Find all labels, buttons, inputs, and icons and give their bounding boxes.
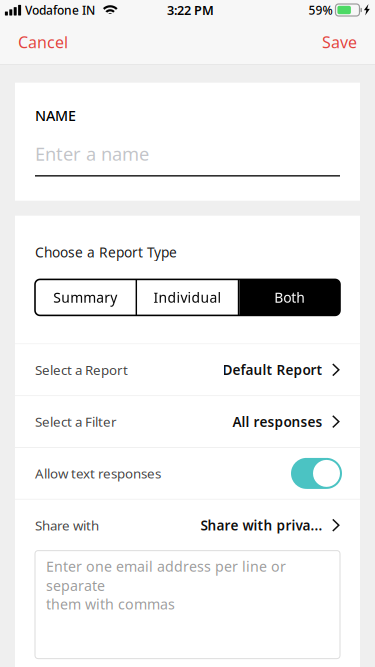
button[interactable]: Cancel: [0, 20, 82, 63]
staticText: Share with priva...: [201, 516, 323, 534]
staticText: Enter a name: [35, 141, 149, 166]
staticText: Summary: [53, 288, 117, 307]
button[interactable]: Save: [308, 20, 375, 63]
staticText: 3:22 PM: [167, 1, 214, 19]
button[interactable]: Allow text responses: [15, 448, 360, 499]
staticText: Save: [322, 31, 357, 53]
staticText: Vodafone IN: [25, 2, 95, 18]
staticText: Choose a Report Type: [35, 243, 177, 261]
staticText: NAME: [35, 106, 76, 125]
staticText: All responses: [233, 412, 323, 431]
staticText: Share with: [35, 516, 99, 534]
button[interactable]: Summary: [35, 279, 136, 315]
staticText: Select a Filter: [35, 412, 117, 431]
staticText: Select a Report: [35, 361, 128, 379]
staticText: Both: [274, 288, 305, 307]
staticText: them with commas: [46, 594, 175, 614]
staticText: 59%: [308, 2, 332, 18]
staticText: Cancel: [18, 31, 68, 53]
button[interactable]: Select a Filter: [15, 396, 360, 447]
staticText: Individual: [153, 288, 221, 307]
button[interactable]: Individual: [137, 279, 238, 315]
button[interactable]: Select a Report: [15, 344, 360, 395]
button[interactable]: Both: [239, 279, 340, 315]
button[interactable]: Share with: [15, 500, 360, 551]
staticText: Default Report: [223, 360, 323, 379]
staticText: Allow text responses: [35, 464, 161, 482]
staticText: Enter one email address per line or sepa…: [46, 557, 286, 595]
